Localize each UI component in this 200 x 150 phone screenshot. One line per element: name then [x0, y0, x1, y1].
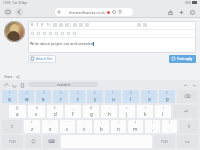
button[interactable]: #: [28, 105, 45, 118]
button[interactable]: U: [40, 22, 45, 28]
button[interactable]: Tabs: [4, 8, 12, 16]
button[interactable]: ?123: [154, 135, 175, 148]
button[interactable]: :: [77, 120, 92, 133]
staticText: k: [144, 111, 147, 117]
button[interactable]: Tool 3: [42, 31, 47, 36]
button[interactable]: Clipboard: [19, 82, 25, 88]
staticText: y: [94, 96, 97, 102]
button[interactable]: I: [35, 22, 40, 28]
staticText: ): [163, 106, 164, 110]
button[interactable]: Format tool 3: [72, 22, 78, 28]
button[interactable]: *: [24, 120, 40, 133]
button[interactable]: Tool 2: [36, 31, 41, 36]
button[interactable]: Tool 7: [66, 31, 71, 36]
button[interactable]: 0: [159, 90, 175, 103]
button[interactable]: Your profile: [4, 21, 25, 42]
button[interactable]: Tool 4: [48, 31, 53, 36]
button[interactable]: Format tool 8: [142, 22, 148, 28]
button[interactable]: Shift right: [179, 120, 198, 133]
button[interactable]: @: [9, 105, 26, 118]
staticText: q: [8, 96, 11, 102]
staticText: :: [84, 121, 85, 125]
staticText: j: [126, 111, 128, 117]
staticText: 0: [166, 91, 168, 95]
button[interactable]: Tool 5: [54, 31, 59, 36]
button[interactable]: Redo: [11, 82, 17, 88]
button[interactable]: !: [111, 120, 126, 133]
button[interactable]: Next suggestion: [191, 82, 197, 88]
staticText: _: [72, 106, 74, 110]
button[interactable]: Tool 6: [60, 31, 65, 36]
button[interactable]: 8: [123, 90, 139, 103]
button[interactable]: Format tool 2: [64, 22, 70, 28]
staticText: ?: [169, 121, 171, 125]
button[interactable]: 3: [36, 90, 51, 103]
staticText: ?123: [9, 140, 16, 144]
staticText: +: [126, 106, 128, 110]
staticText: 96%: [185, 1, 191, 5]
staticText: unsealed: [57, 83, 70, 87]
button[interactable]: Tool 1: [30, 31, 35, 36]
button[interactable]: &: [83, 105, 99, 118]
button[interactable]: Hide keyboard: [177, 135, 198, 148]
button[interactable]: Format tool 5: [84, 22, 90, 28]
button[interactable]: ": [42, 120, 58, 133]
button[interactable]: Post reply: [169, 55, 196, 63]
button[interactable]: Share: [166, 8, 174, 16]
button[interactable]: Voice input: [43, 135, 59, 148]
staticText: $: [54, 106, 56, 110]
button[interactable]: -: [101, 105, 117, 118]
button[interactable]: unsealed: [28, 82, 98, 87]
staticText: Post reply: [177, 57, 193, 61]
button[interactable]: 7: [105, 90, 121, 103]
staticText: c: [66, 126, 69, 132]
button[interactable]: (: [137, 105, 153, 118]
button[interactable]: 6: [87, 90, 103, 103]
button[interactable]: Format tool 1: [58, 22, 64, 28]
staticText: 1: [9, 91, 11, 95]
button[interactable]: ?123: [2, 135, 23, 148]
staticText: p: [166, 96, 169, 102]
button[interactable]: Format tool 4: [78, 22, 84, 28]
button[interactable]: Enter: [173, 105, 198, 118]
button[interactable]: Tab overview: [188, 8, 196, 16]
button[interactable]: theneedleworks.co.uk: [55, 8, 133, 16]
button[interactable]: ': [60, 120, 75, 133]
button[interactable]: 4: [53, 90, 68, 103]
staticText: m: [133, 126, 138, 132]
button[interactable]: 5: [70, 90, 85, 103]
staticText: *: [31, 121, 33, 125]
button[interactable]: Attach files: [28, 55, 56, 63]
button[interactable]: _: [65, 105, 81, 118]
staticText: .: [169, 126, 171, 132]
staticText: n: [117, 126, 120, 132]
button[interactable]: B: [30, 22, 35, 28]
button[interactable]: ?: [162, 120, 177, 133]
button[interactable]: Back: [15, 8, 23, 16]
button[interactable]: Shift: [2, 120, 22, 133]
button[interactable]: !: [145, 120, 160, 133]
button[interactable]: Format tool 7: [136, 22, 142, 28]
staticText: Share: [4, 75, 13, 79]
button[interactable]: Undo: [3, 82, 9, 88]
button[interactable]: $: [47, 105, 63, 118]
button[interactable]: ;: [94, 120, 109, 133]
staticText: x: [49, 126, 52, 132]
button[interactable]: ?: [128, 120, 143, 133]
staticText: ,: [152, 126, 154, 132]
button[interactable]: Previous suggestion: [182, 82, 188, 88]
button[interactable]: ): [155, 105, 171, 118]
button[interactable]: Emoji: [25, 135, 41, 148]
button[interactable]: +: [119, 105, 135, 118]
button[interactable]: Format tool 0: [52, 22, 58, 28]
staticText: o: [148, 96, 151, 102]
button[interactable]: Add bookmark: [177, 8, 185, 16]
button[interactable]: Share: [15, 74, 20, 79]
button[interactable]: 9: [141, 90, 157, 103]
button[interactable]: Tool 8: [72, 31, 77, 36]
button[interactable]: S: [45, 22, 50, 28]
button[interactable]: Backspace: [177, 90, 198, 103]
button[interactable]: 2: [19, 90, 34, 103]
button[interactable]: 1: [2, 90, 17, 103]
